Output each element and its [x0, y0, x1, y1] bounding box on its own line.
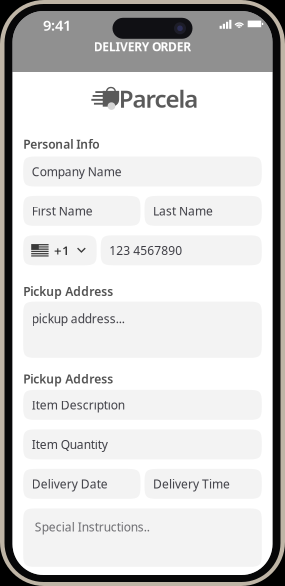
- button[interactable]: Item Description: [23, 390, 262, 420]
- staticText: pickup address...: [32, 311, 125, 326]
- staticText: Personal Info: [23, 136, 99, 152]
- button[interactable]: pickup address...: [23, 302, 262, 358]
- button[interactable]: Company Name: [23, 156, 262, 186]
- staticText: First Name: [32, 203, 93, 219]
- staticText: Parcela: [119, 83, 198, 114]
- staticText: +1: [54, 241, 70, 259]
- button[interactable]: Last Name: [144, 196, 262, 226]
- staticText: Item Description: [32, 397, 125, 413]
- button[interactable]: Country code +1: [23, 235, 97, 265]
- button[interactable]: 123 4567890: [101, 235, 262, 265]
- button[interactable]: Special Instructions..: [23, 508, 262, 567]
- button[interactable]: Delivery Date: [23, 469, 140, 499]
- button[interactable]: First Name: [23, 196, 140, 226]
- staticText: 123 4567890: [109, 242, 182, 258]
- staticText: Company Name: [32, 163, 122, 179]
- staticText: Last Name: [153, 203, 213, 219]
- staticText: Item Quantity: [32, 436, 108, 452]
- button[interactable]: Item Quantity: [23, 429, 262, 459]
- button[interactable]: Delivery Time: [144, 469, 262, 499]
- staticText: Delivery Time: [153, 476, 230, 492]
- staticText: Special Instructions..: [35, 519, 150, 535]
- staticText: Pickup Address: [23, 283, 113, 299]
- staticText: Pickup Address: [23, 371, 113, 387]
- staticText: DELIVERY ORDER: [94, 39, 191, 55]
- staticText: 9:41: [43, 15, 71, 35]
- staticText: Delivery Date: [32, 476, 108, 492]
